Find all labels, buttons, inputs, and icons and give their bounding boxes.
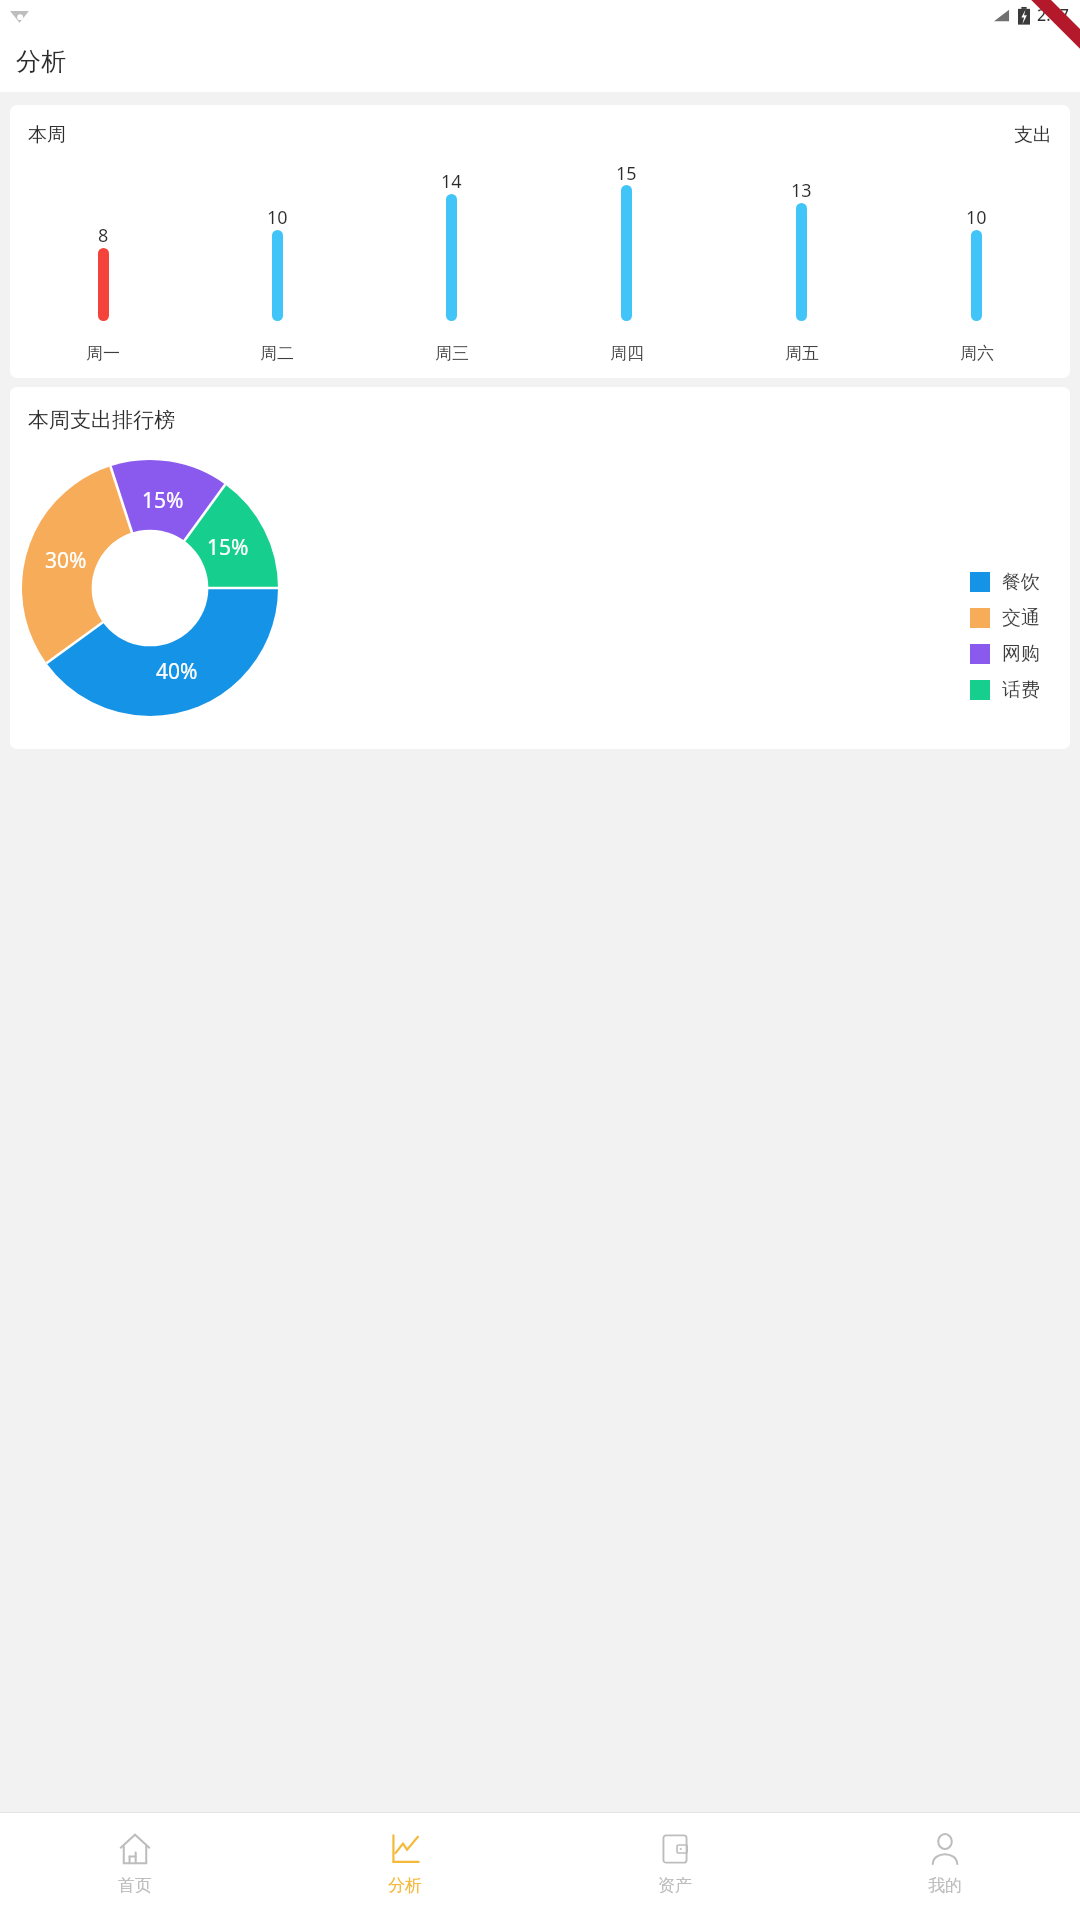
staticText: 餐饮 bbox=[1002, 570, 1040, 594]
staticText: 周四 bbox=[610, 343, 644, 364]
staticText: 15 bbox=[616, 161, 637, 185]
staticText: 8 bbox=[98, 223, 109, 248]
staticText: 2:17 bbox=[1037, 4, 1069, 26]
staticText: 10 bbox=[267, 205, 288, 230]
button[interactable]: 网购 bbox=[970, 642, 1040, 666]
button[interactable]: 资产 bbox=[540, 1813, 810, 1920]
staticText: 40% bbox=[156, 657, 198, 686]
staticText: 15% bbox=[142, 486, 184, 515]
staticText: 周二 bbox=[260, 343, 294, 364]
staticText: 周三 bbox=[435, 343, 469, 364]
staticText: 10 bbox=[966, 205, 987, 230]
staticText: 分析 bbox=[16, 46, 66, 77]
button[interactable]: 本周 bbox=[10, 105, 1070, 378]
staticText: 网购 bbox=[1002, 642, 1040, 666]
button[interactable]: 分析 bbox=[270, 1813, 540, 1920]
staticText: 13 bbox=[791, 178, 812, 203]
staticText: 周五 bbox=[785, 343, 819, 364]
button[interactable]: 交通 bbox=[970, 606, 1040, 630]
other: 分析 bbox=[388, 1832, 422, 1866]
staticText: 话费 bbox=[1002, 678, 1040, 702]
staticText: 资产 bbox=[658, 1875, 692, 1896]
staticText: 周一 bbox=[86, 343, 120, 364]
button[interactable]: 餐饮 bbox=[970, 570, 1040, 594]
button[interactable]: 首页 bbox=[0, 1813, 270, 1920]
staticText: 周六 bbox=[960, 343, 994, 364]
button[interactable]: 话费 bbox=[970, 678, 1040, 702]
button[interactable]: 我的 bbox=[810, 1813, 1080, 1920]
button[interactable]: 本周支出排行榜 bbox=[10, 387, 1070, 749]
staticText: 交通 bbox=[1002, 606, 1040, 630]
staticText: 30% bbox=[45, 546, 87, 575]
staticText: 15% bbox=[207, 533, 249, 562]
other: 首页 bbox=[118, 1832, 152, 1866]
staticText: 首页 bbox=[118, 1875, 152, 1896]
other: 我的 bbox=[928, 1832, 962, 1866]
staticText: 本周支出排行榜 bbox=[28, 407, 175, 433]
staticText: 14 bbox=[441, 169, 462, 194]
staticText: 我的 bbox=[928, 1875, 962, 1896]
staticText: 分析 bbox=[388, 1875, 422, 1896]
staticText: 支出 bbox=[1014, 123, 1052, 147]
other: 资产 bbox=[658, 1832, 692, 1866]
staticText: 本周 bbox=[28, 123, 66, 147]
